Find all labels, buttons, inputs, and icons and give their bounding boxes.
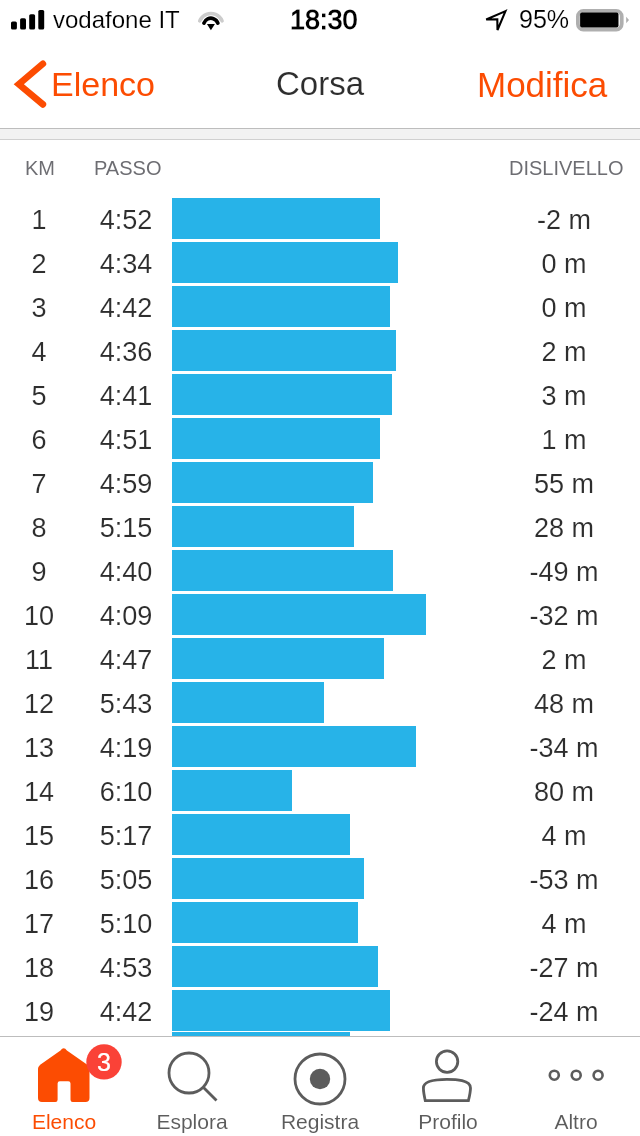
button[interactable]: Registra [256, 1037, 384, 1136]
staticText: 4:42 [76, 997, 176, 1027]
button[interactable]: 10 [0, 592, 640, 636]
button[interactable]: Elenco [8, 44, 160, 128]
staticText: 16 [0, 865, 78, 895]
staticText: 4:53 [76, 953, 176, 983]
staticText: Altro [512, 1110, 640, 1133]
button[interactable]: 4 [0, 328, 640, 372]
button[interactable]: 9 [0, 548, 640, 592]
staticText: Esplora [128, 1110, 256, 1133]
staticText: 4 m [464, 821, 640, 851]
staticText: 4:09 [76, 601, 176, 631]
staticText: 0 m [464, 1034, 640, 1055]
staticText: DISLIVELLO [509, 157, 624, 179]
staticText: -49 m [464, 557, 640, 587]
staticText: 6 [0, 425, 78, 455]
staticText: vodafone IT [53, 6, 180, 33]
staticText: 18 [0, 953, 78, 983]
staticText: 0 m [464, 293, 640, 323]
staticText: -27 m [464, 953, 640, 983]
staticText: 5:17 [76, 821, 176, 851]
staticText: 12 [0, 689, 78, 719]
staticText: 0 m [464, 249, 640, 279]
staticText: Registra [256, 1110, 384, 1133]
staticText: 5:15 [76, 513, 176, 543]
button[interactable]: 15 [0, 812, 640, 856]
button[interactable]: 6 [0, 416, 640, 460]
staticText: 4:59 [76, 469, 176, 499]
button[interactable]: 16 [0, 856, 640, 900]
staticText: 1 m [464, 425, 640, 455]
staticText: 28 m [464, 513, 640, 543]
staticText: 17 [0, 909, 78, 939]
button[interactable]: 19 [0, 988, 640, 1032]
staticText: Profilo [384, 1110, 512, 1133]
button[interactable]: Elenco [0, 1037, 128, 1136]
staticText: 5:00 [76, 1034, 176, 1055]
staticText: 3 [0, 293, 78, 323]
staticText: 55 m [464, 469, 640, 499]
button[interactable]: 17 [0, 900, 640, 944]
staticText: 9 [0, 557, 78, 587]
staticText: 4:40 [76, 557, 176, 587]
staticText: 14 [0, 777, 78, 807]
staticText: 2 m [464, 645, 640, 675]
staticText: PASSO [94, 157, 162, 179]
staticText: 3 [96, 1048, 112, 1076]
button[interactable]: 1 [0, 196, 640, 240]
staticText: 4:42 [76, 293, 176, 323]
staticText: 4:19 [76, 733, 176, 763]
staticText: 5:05 [76, 865, 176, 895]
staticText: 4:51 [76, 425, 176, 455]
staticText: 4 [0, 337, 78, 367]
staticText: -34 m [464, 733, 640, 763]
staticText: 11 [0, 645, 78, 675]
staticText: -2 m [464, 205, 640, 235]
staticText: 7 [0, 469, 78, 499]
staticText: -53 m [464, 865, 640, 895]
button[interactable]: 13 [0, 724, 640, 768]
staticText: 15 [0, 821, 78, 851]
staticText: 20 [0, 1034, 78, 1055]
staticText: 5:43 [76, 689, 176, 719]
staticText: Elenco [51, 65, 155, 103]
staticText: 3 m [464, 381, 640, 411]
staticText: 4:41 [76, 381, 176, 411]
button[interactable]: 2 [0, 240, 640, 284]
button[interactable]: 5 [0, 372, 640, 416]
staticText: 4 m [464, 909, 640, 939]
staticText: Corsa [276, 65, 365, 102]
staticText: -32 m [464, 601, 640, 631]
staticText: -24 m [464, 997, 640, 1027]
staticText: 18:30 [290, 5, 358, 35]
button[interactable]: 14 [0, 768, 640, 812]
button[interactable]: Altro [512, 1037, 640, 1136]
staticText: 13 [0, 733, 78, 763]
staticText: 80 m [464, 777, 640, 807]
button[interactable]: 3 [0, 284, 640, 328]
staticText: 10 [0, 601, 78, 631]
staticText: 4:52 [76, 205, 176, 235]
button[interactable]: 8 [0, 504, 640, 548]
button[interactable]: 12 [0, 680, 640, 724]
button[interactable]: Modifica [461, 53, 640, 116]
button[interactable]: 11 [0, 636, 640, 680]
staticText: 2 [0, 249, 78, 279]
staticText: 5 [0, 381, 78, 411]
staticText: 4:47 [76, 645, 176, 675]
button[interactable]: Esplora [128, 1037, 256, 1136]
staticText: 1 [0, 205, 78, 235]
staticText: 8 [0, 513, 78, 543]
button[interactable]: 20 [0, 1032, 640, 1053]
staticText: 2 m [464, 337, 640, 367]
staticText: 4:34 [76, 249, 176, 279]
staticText: 4:36 [76, 337, 176, 367]
staticText: KM [25, 157, 55, 179]
staticText: 6:10 [76, 777, 176, 807]
staticText: 95% [519, 5, 570, 33]
button[interactable]: 7 [0, 460, 640, 504]
button[interactable]: Profilo [384, 1037, 512, 1136]
button[interactable]: 18 [0, 944, 640, 988]
staticText: 5:10 [76, 909, 176, 939]
staticText: 48 m [464, 689, 640, 719]
staticText: 19 [0, 997, 78, 1027]
